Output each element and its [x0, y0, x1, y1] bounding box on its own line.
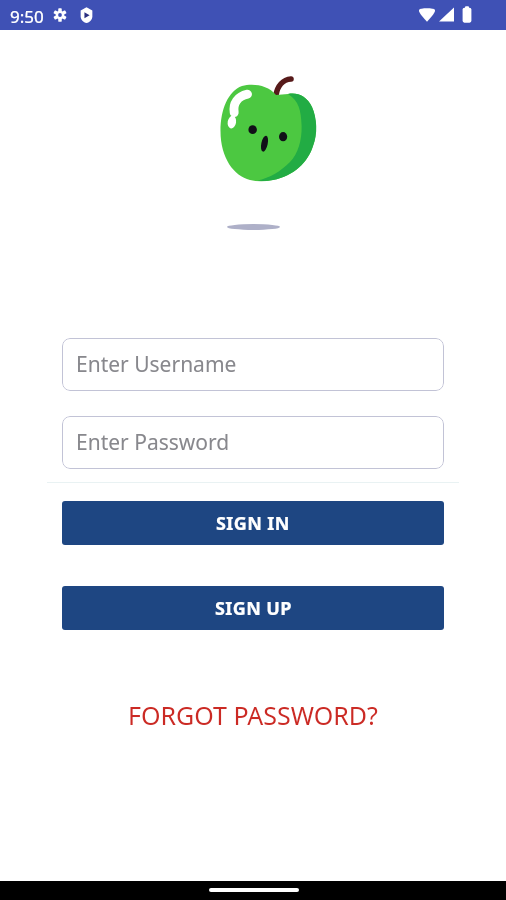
staticText: SIGN IN [216, 511, 290, 536]
staticText: 9:50 [10, 5, 44, 28]
staticText: Enter Password [76, 428, 230, 457]
button[interactable]: Enter Password [62, 416, 444, 469]
staticText: Enter Username [76, 350, 237, 379]
button[interactable]: SIGN IN [62, 501, 444, 545]
button[interactable]: Enter Username [62, 338, 444, 391]
staticText: SIGN UP [215, 596, 292, 621]
button[interactable]: FORGOT PASSWORD? [0, 697, 506, 733]
staticText: FORGOT PASSWORD? [128, 698, 378, 732]
button[interactable]: SIGN UP [62, 586, 444, 630]
